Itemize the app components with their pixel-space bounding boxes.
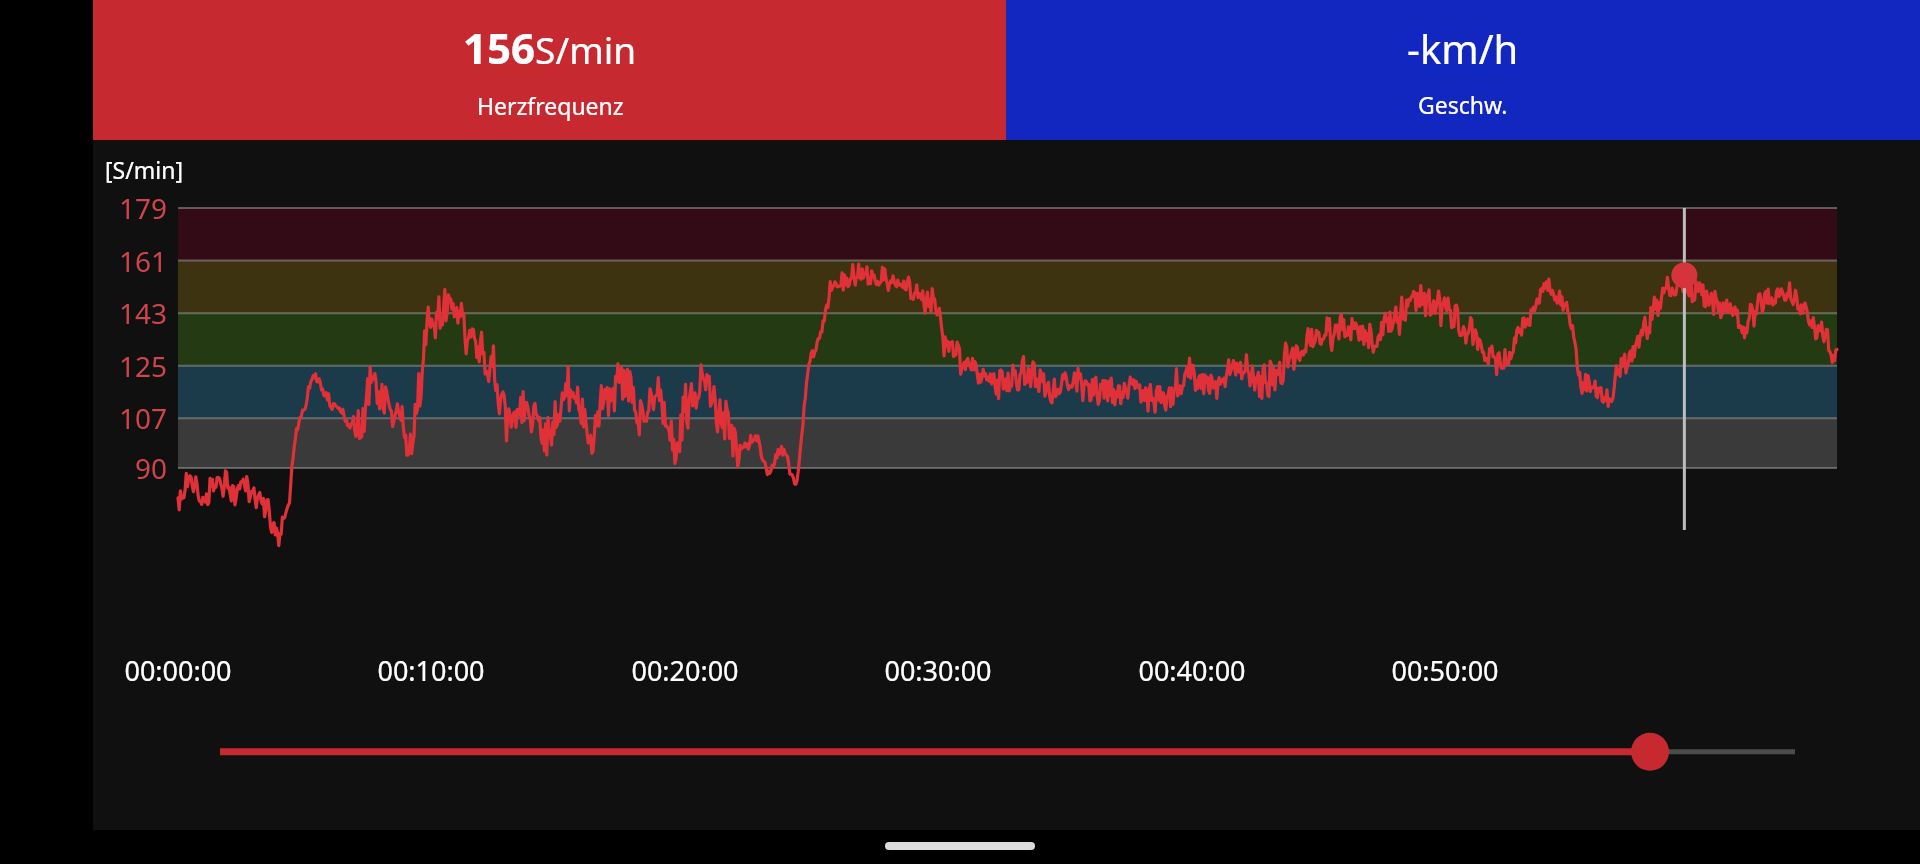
- staticText: 00:20:00: [621, 652, 749, 689]
- staticText: 00:50:00: [1381, 652, 1509, 689]
- button[interactable]: -km/h: [1006, 0, 1920, 140]
- staticText: 125: [93, 347, 167, 385]
- staticText: 00:10:00: [367, 652, 495, 689]
- staticText: 90: [93, 449, 167, 487]
- button[interactable]: 156S/min: [93, 0, 1006, 140]
- staticText: 00:30:00: [874, 652, 1002, 689]
- staticText: [S/min]: [105, 154, 183, 185]
- button[interactable]: Zeitposition: [93, 710, 1920, 820]
- staticText: 143: [93, 294, 167, 332]
- staticText: 156S/min: [463, 19, 637, 76]
- staticText: 179: [93, 189, 167, 227]
- staticText: 00:00:00: [114, 652, 242, 689]
- staticText: -km/h: [1407, 21, 1519, 75]
- staticText: 161: [93, 242, 167, 280]
- staticText: Geschw.: [1418, 89, 1508, 120]
- staticText: Herzfrequenz: [477, 90, 624, 121]
- staticText: 00:40:00: [1128, 652, 1256, 689]
- staticText: 107: [93, 399, 167, 437]
